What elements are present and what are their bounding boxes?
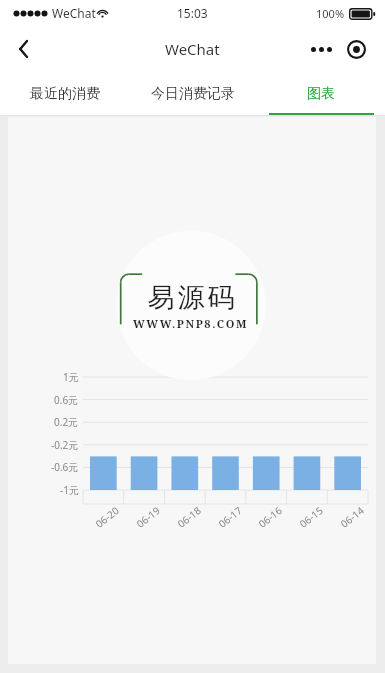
button[interactable]: 今日消费记录 (129, 71, 257, 116)
button[interactable]: Back (0, 26, 46, 71)
staticText: WWW.PNP8.COM (133, 316, 249, 331)
staticText: 15:03 (177, 5, 208, 21)
staticText: 06-19 (133, 503, 163, 531)
button[interactable]: 最近的消费 (0, 71, 129, 116)
staticText: 100% (316, 6, 345, 21)
staticText: 图表 (307, 85, 335, 103)
staticText: 0.2元 (54, 415, 79, 429)
staticText: 06-16 (255, 503, 285, 531)
staticText: 易源码 (146, 281, 236, 315)
staticText: -0.6元 (51, 460, 79, 474)
button[interactable]: Target (338, 31, 374, 67)
staticText: 06-14 (337, 503, 367, 531)
staticText: 今日消费记录 (151, 85, 235, 103)
staticText: 06-17 (215, 503, 245, 531)
staticText: 06-15 (296, 503, 326, 531)
staticText: -1元 (60, 483, 79, 497)
staticText: 1元 (63, 370, 79, 384)
staticText: 最近的消费 (30, 85, 100, 103)
staticText: 06-20 (92, 503, 122, 531)
staticText: 06-18 (174, 503, 204, 531)
staticText: WeChat (165, 39, 220, 59)
staticText: 0.6元 (54, 393, 79, 407)
staticText: WeChat (52, 5, 96, 21)
button[interactable]: More options (305, 31, 338, 67)
staticText: -0.2元 (51, 438, 79, 452)
button[interactable]: 图表 (257, 71, 385, 116)
